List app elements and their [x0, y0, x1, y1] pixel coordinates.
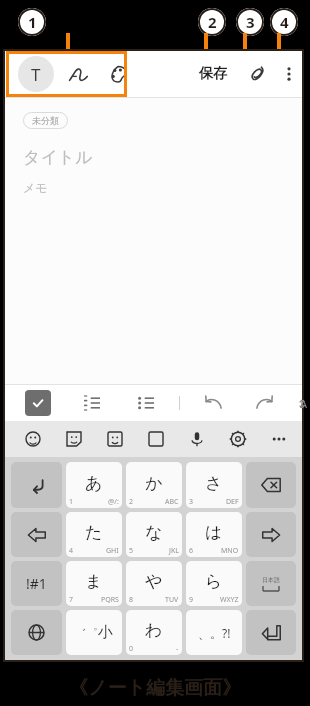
- button[interactable]: Sticker: [60, 425, 88, 453]
- staticText: 0: [129, 644, 134, 654]
- staticText: 2: [129, 497, 134, 507]
- button[interactable]: Text mode: [18, 56, 54, 92]
- staticText: 8: [129, 595, 134, 605]
- staticText: タイトル: [23, 147, 93, 168]
- staticText: 4: [69, 546, 74, 556]
- button[interactable]: や: [126, 561, 182, 606]
- button[interactable]: Attach: [239, 56, 275, 92]
- button[interactable]: さ: [186, 462, 242, 508]
- staticText: ゛゜: [75, 626, 98, 640]
- staticText: A: [300, 396, 302, 411]
- staticText: MNO: [221, 546, 239, 556]
- staticText: PQRS: [101, 595, 119, 605]
- staticText: 保存: [199, 65, 227, 83]
- button[interactable]: 小: [66, 610, 122, 655]
- staticText: 7: [69, 595, 74, 605]
- staticText: 、。?!: [198, 625, 231, 641]
- button[interactable]: な: [126, 512, 182, 557]
- staticText: な: [145, 522, 163, 543]
- button[interactable]: Numbered list: [79, 390, 105, 416]
- staticText: ABC: [165, 497, 179, 507]
- staticText: T: [31, 63, 41, 86]
- staticText: は: [205, 522, 223, 543]
- button[interactable]: は: [186, 512, 242, 557]
- button[interactable]: あ: [66, 462, 122, 508]
- staticText: メモ: [23, 180, 48, 195]
- staticText: や: [145, 571, 163, 592]
- staticText: 6: [189, 546, 194, 556]
- staticText: @/:: [108, 497, 119, 507]
- staticText: 3: [246, 12, 255, 32]
- button[interactable]: 未分類: [32, 115, 59, 126]
- button[interactable]: Settings: [224, 425, 252, 453]
- staticText: GHI: [106, 546, 119, 556]
- button[interactable]: Redo: [252, 390, 278, 416]
- button[interactable]: Handwriting mode: [60, 56, 96, 92]
- staticText: DEF: [226, 497, 239, 507]
- button[interactable]: More: [265, 425, 293, 453]
- button[interactable]: Emoji: [19, 425, 47, 453]
- staticText: あ: [85, 473, 103, 494]
- button[interactable]: ↺: [11, 462, 62, 508]
- button[interactable]: Checklist: [25, 390, 51, 416]
- staticText: わ: [145, 620, 163, 641]
- staticText: 3: [189, 497, 194, 507]
- staticText: 2: [208, 12, 217, 32]
- staticText: TUV: [165, 595, 179, 605]
- staticText: JKL: [169, 546, 179, 556]
- staticText: か: [145, 473, 163, 494]
- button[interactable]: Symbols: [142, 425, 170, 453]
- button[interactable]: !#1: [11, 561, 62, 606]
- button[interactable]: ⇨: [246, 512, 296, 557]
- button[interactable]: ま: [66, 561, 122, 606]
- button[interactable]: 、。?!: [186, 610, 242, 655]
- button[interactable]: わ: [126, 610, 182, 655]
- staticText: 1: [69, 497, 74, 507]
- button[interactable]: ら: [186, 561, 242, 606]
- button[interactable]: ⌫: [246, 462, 296, 508]
- staticText: 小: [98, 623, 113, 642]
- staticText: ま: [85, 571, 103, 592]
- staticText: 5: [129, 546, 134, 556]
- staticText: ら: [205, 571, 223, 592]
- staticText: 日本語: [262, 576, 280, 584]
- staticText: !#1: [26, 574, 47, 593]
- button[interactable]: ⊕: [11, 610, 62, 655]
- button[interactable]: More options: [271, 56, 307, 92]
- staticText: 9: [189, 595, 194, 605]
- button[interactable]: Undo: [200, 390, 226, 416]
- button[interactable]: ↵: [246, 610, 296, 655]
- staticText: -: [176, 644, 179, 654]
- staticText: た: [85, 522, 103, 543]
- button[interactable]: ␣: [246, 561, 296, 606]
- button[interactable]: ⇦: [11, 512, 62, 557]
- button[interactable]: Text size: [300, 396, 302, 411]
- staticText: 未分類: [32, 115, 59, 126]
- button[interactable]: Emoticon: [101, 425, 129, 453]
- button[interactable]: か: [126, 462, 182, 508]
- button[interactable]: Voice input: [183, 425, 211, 453]
- staticText: 1: [28, 12, 37, 32]
- staticText: WXYZ: [220, 595, 239, 605]
- button[interactable]: Palette: [100, 56, 136, 92]
- button[interactable]: 保存: [191, 56, 235, 92]
- staticText: 4: [280, 12, 289, 32]
- button[interactable]: た: [66, 512, 122, 557]
- button[interactable]: Bulleted list: [133, 390, 159, 416]
- staticText: さ: [205, 473, 223, 494]
- staticText: 《ノート編集画面》: [69, 676, 241, 700]
